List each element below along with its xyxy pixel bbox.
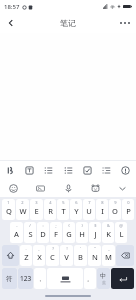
staticText: ,	[38, 246, 40, 251]
staticText: :	[42, 223, 44, 228]
staticText: U	[86, 206, 92, 216]
staticText: -	[16, 223, 18, 228]
button[interactable]: &	[102, 222, 114, 243]
button[interactable]: '	[74, 245, 87, 266]
button[interactable]: Emoji	[6, 181, 21, 196]
button[interactable]: ，	[34, 268, 46, 289]
staticText: 2	[21, 200, 24, 205]
staticText: D	[40, 229, 46, 239]
staticText: 8	[101, 200, 104, 205]
button[interactable]: Voice input	[61, 181, 76, 196]
button[interactable]: Back	[2, 14, 20, 32]
staticText: V	[64, 252, 69, 262]
staticText: F	[54, 229, 58, 239]
staticText: N	[92, 252, 98, 262]
staticText: I	[101, 206, 104, 216]
staticText: 5	[62, 200, 65, 205]
button[interactable]: _	[102, 245, 115, 266]
staticText: !	[66, 246, 68, 251]
staticText: '	[80, 246, 81, 251]
button[interactable]: Bold	[3, 163, 18, 178]
staticText: G	[66, 229, 72, 239]
staticText: 9	[114, 200, 117, 205]
button[interactable]: Shift	[2, 245, 19, 266]
button[interactable]: Text style	[22, 163, 37, 178]
staticText: @	[119, 223, 123, 228]
staticText: 。	[87, 275, 93, 283]
staticText: ;	[55, 223, 57, 228]
staticText: _	[108, 246, 110, 251]
button[interactable]: 中	[97, 268, 110, 289]
staticText: ，	[37, 275, 43, 283]
button[interactable]: !	[60, 245, 73, 266]
staticText: 123	[20, 274, 32, 283]
staticText: 符	[6, 275, 13, 283]
staticText: S	[28, 229, 33, 239]
button[interactable]: 5	[57, 199, 69, 220]
button[interactable]: Backspace	[116, 245, 134, 266]
button[interactable]: More options	[116, 14, 134, 32]
button[interactable]: )	[76, 222, 88, 243]
button[interactable]: $	[89, 222, 101, 243]
button[interactable]: .	[20, 245, 32, 266]
button[interactable]: -	[10, 222, 23, 243]
button[interactable]: "	[88, 245, 101, 266]
button[interactable]: ;	[50, 222, 62, 243]
button[interactable]: Info	[118, 163, 133, 178]
staticText: $	[94, 223, 97, 228]
button[interactable]: 9	[109, 199, 121, 220]
staticText: &	[107, 223, 110, 228]
button[interactable]: (	[63, 222, 75, 243]
button[interactable]: ?	[46, 245, 59, 266]
staticText: O	[112, 206, 118, 216]
staticText: Q	[6, 206, 12, 216]
staticText: (	[68, 223, 70, 228]
button[interactable]: 2	[16, 199, 29, 220]
staticText: W	[19, 206, 27, 216]
staticText: Z	[24, 252, 29, 262]
staticText: 中	[100, 272, 107, 280]
staticText: J	[94, 229, 97, 239]
button[interactable]: 符	[2, 268, 17, 289]
staticText: C	[50, 252, 55, 262]
button[interactable]: Collapse	[115, 181, 130, 196]
button[interactable]: 8	[96, 199, 108, 220]
button[interactable]: /	[24, 222, 36, 243]
staticText: T	[61, 206, 66, 216]
staticText: X	[37, 252, 42, 262]
button[interactable]: Numbered list	[41, 163, 56, 178]
button[interactable]: ,	[33, 245, 45, 266]
button[interactable]: 3	[30, 199, 43, 220]
button[interactable]: 123	[18, 268, 33, 289]
button[interactable]: Indent	[99, 163, 114, 178]
button[interactable]: 0	[122, 199, 134, 220]
button[interactable]: Checklist	[80, 163, 95, 178]
staticText: 3	[35, 200, 38, 205]
button[interactable]: Insert image	[33, 181, 48, 196]
staticText: /	[29, 223, 31, 228]
button[interactable]: 7	[83, 199, 95, 220]
staticText: 1	[7, 200, 10, 205]
staticText: )	[81, 223, 83, 228]
staticText: B	[78, 252, 83, 262]
staticText: E	[34, 206, 39, 216]
button[interactable]: 6	[70, 199, 82, 220]
staticText: M	[105, 252, 112, 262]
button[interactable]: 4	[44, 199, 56, 220]
staticText: 4	[49, 200, 52, 205]
staticText: H	[79, 229, 85, 239]
button[interactable]: @	[115, 222, 127, 243]
staticText: K	[106, 229, 111, 239]
staticText: 0	[127, 200, 130, 205]
button[interactable]: 1	[2, 199, 15, 220]
button[interactable]: Sticker	[88, 181, 103, 196]
staticText: Y	[74, 206, 79, 216]
staticText: ?	[52, 246, 54, 251]
staticText: A	[14, 229, 19, 239]
button[interactable]: :	[37, 222, 49, 243]
button[interactable]: Space	[47, 268, 83, 289]
button[interactable]: 。	[84, 268, 96, 289]
button[interactable]: Bulleted list	[61, 163, 76, 178]
button[interactable]: Enter	[111, 268, 134, 289]
